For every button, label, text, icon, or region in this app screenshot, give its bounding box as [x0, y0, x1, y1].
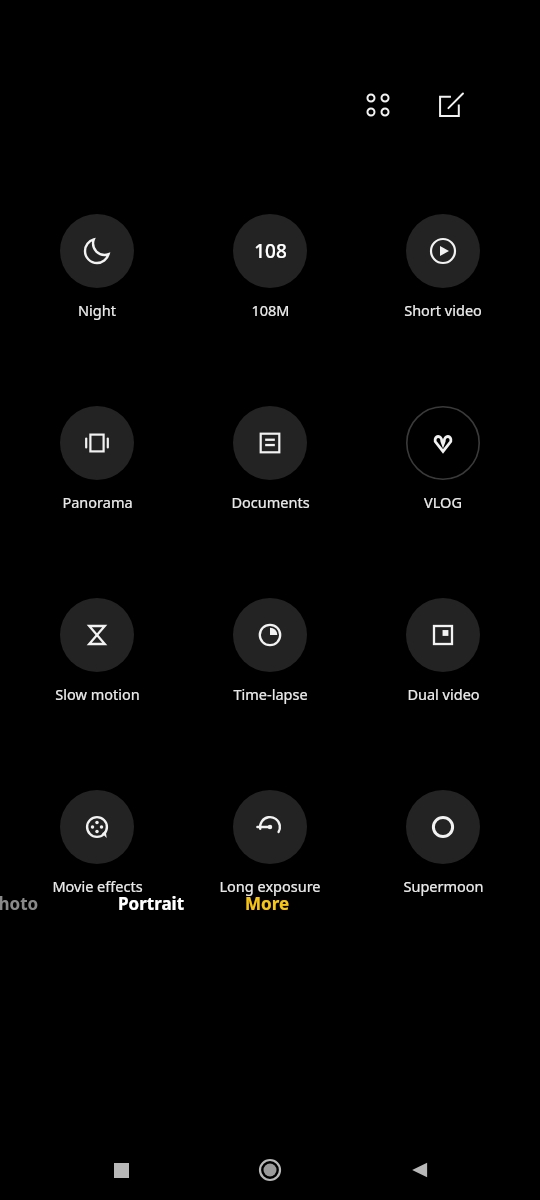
button[interactable]: 108: [194, 214, 346, 320]
button[interactable]: Slow motion: [21, 598, 173, 704]
staticText: Documents: [231, 492, 310, 512]
staticText: 108M: [251, 300, 290, 320]
staticText: Slow motion: [55, 684, 140, 704]
button[interactable]: Night: [21, 214, 173, 320]
staticText: Photo: [0, 892, 39, 915]
staticText: Movie effects: [52, 876, 143, 896]
button[interactable]: Supermoon: [367, 790, 519, 896]
button[interactable]: Edit modes: [428, 82, 474, 128]
button[interactable]: Short video: [367, 214, 519, 320]
button[interactable]: Home: [242, 1142, 298, 1198]
button[interactable]: Recents: [93, 1142, 149, 1198]
staticText: Night: [78, 300, 116, 320]
staticText: Long exposure: [219, 876, 321, 896]
staticText: Dual video: [407, 684, 480, 704]
button[interactable]: Documents: [194, 406, 346, 512]
button[interactable]: Portrait: [108, 886, 195, 921]
button[interactable]: VLOG: [367, 406, 519, 512]
staticText: Time-lapse: [233, 684, 308, 704]
staticText: VLOG: [424, 492, 462, 512]
button[interactable]: Movie effects: [21, 790, 173, 896]
staticText: Supermoon: [403, 876, 484, 896]
staticText: More: [245, 892, 290, 915]
staticText: Portrait: [118, 892, 185, 915]
staticText: 108: [254, 238, 287, 264]
button[interactable]: Camera modes grid: [355, 82, 401, 128]
button[interactable]: More: [235, 886, 300, 921]
button[interactable]: Time-lapse: [194, 598, 346, 704]
staticText: Panorama: [62, 492, 133, 512]
button[interactable]: Dual video: [367, 598, 519, 704]
button[interactable]: Back: [391, 1142, 447, 1198]
button[interactable]: Photo: [0, 886, 49, 921]
staticText: Short video: [404, 300, 482, 320]
button[interactable]: Panorama: [21, 406, 173, 512]
button[interactable]: Long exposure: [194, 790, 346, 896]
